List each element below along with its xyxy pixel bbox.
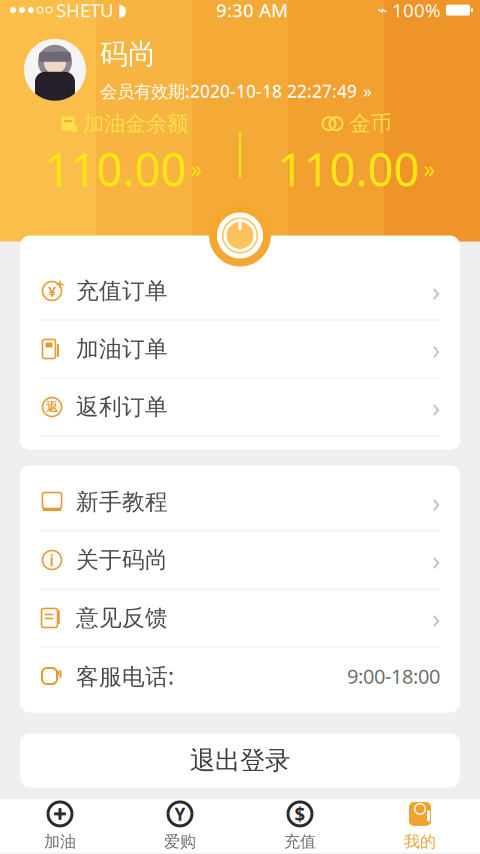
staticText: Y (174, 802, 185, 825)
button[interactable]: 退出登录 (20, 733, 460, 787)
staticText: ⌁ (377, 0, 387, 20)
staticText: 110.00 (277, 139, 419, 199)
staticText: 爱购 (164, 832, 196, 852)
staticText: » (190, 154, 202, 184)
staticText: 加油 (44, 832, 76, 852)
staticText: 新手教程 (76, 488, 168, 516)
staticText: 关于码尚 (76, 546, 168, 574)
staticText: 退出登录 (190, 745, 290, 776)
staticText: 我的 (404, 832, 436, 852)
staticText: 返利订单 (76, 393, 168, 421)
button[interactable]: i (20, 531, 460, 589)
staticText: $ (294, 801, 305, 826)
button[interactable]: 加油金余额 (8, 110, 239, 199)
button[interactable]: 加油 (0, 799, 120, 853)
staticText: ◗ (118, 0, 127, 20)
staticText: › (432, 600, 440, 636)
button[interactable]: 新手教程 (20, 473, 460, 531)
button[interactable]: 金币 (241, 110, 472, 199)
staticText: » (363, 79, 372, 102)
staticText: i (49, 549, 54, 571)
button[interactable]: 头像 (24, 39, 86, 101)
staticText: ¥ (48, 281, 56, 301)
staticText: 返 (46, 400, 58, 414)
staticText: » (423, 154, 435, 184)
staticText: 充值订单 (76, 277, 168, 305)
button[interactable]: 返 (20, 378, 460, 436)
staticText: › (432, 484, 440, 520)
button[interactable]: 我的 (360, 799, 480, 853)
staticText: SHETU (56, 0, 114, 22)
staticText: 客服电话: (76, 661, 174, 691)
staticText: 100% (392, 0, 441, 22)
staticText: › (432, 331, 440, 367)
staticText: 充值 (284, 832, 316, 852)
staticText: + (56, 274, 64, 294)
staticText: 9:30 AM (216, 0, 288, 22)
staticText: 意见反馈 (76, 604, 168, 632)
staticText: › (432, 542, 440, 578)
staticText: 加油金余额 (83, 110, 188, 137)
staticText: › (432, 389, 440, 425)
button[interactable]: Y (120, 799, 240, 853)
button[interactable]: 会员有效期:2020-10-18 22:27:49 (100, 79, 372, 102)
staticText: 金币 (349, 110, 391, 137)
button[interactable]: 意见反馈 (20, 589, 460, 647)
staticText: 110.00 (44, 139, 186, 199)
button[interactable]: 客服电话: (20, 647, 460, 704)
button[interactable]: 加油订单 (20, 320, 460, 378)
staticText: 会员有效期:2020-10-18 22:27:49 (100, 79, 357, 102)
staticText: 加油订单 (76, 335, 168, 363)
button[interactable]: ¥ (20, 262, 460, 320)
button[interactable]: $ (240, 799, 360, 853)
staticText: › (432, 273, 440, 309)
staticText: 码尚 (100, 37, 156, 71)
staticText: 9:00-18:00 (347, 663, 440, 689)
